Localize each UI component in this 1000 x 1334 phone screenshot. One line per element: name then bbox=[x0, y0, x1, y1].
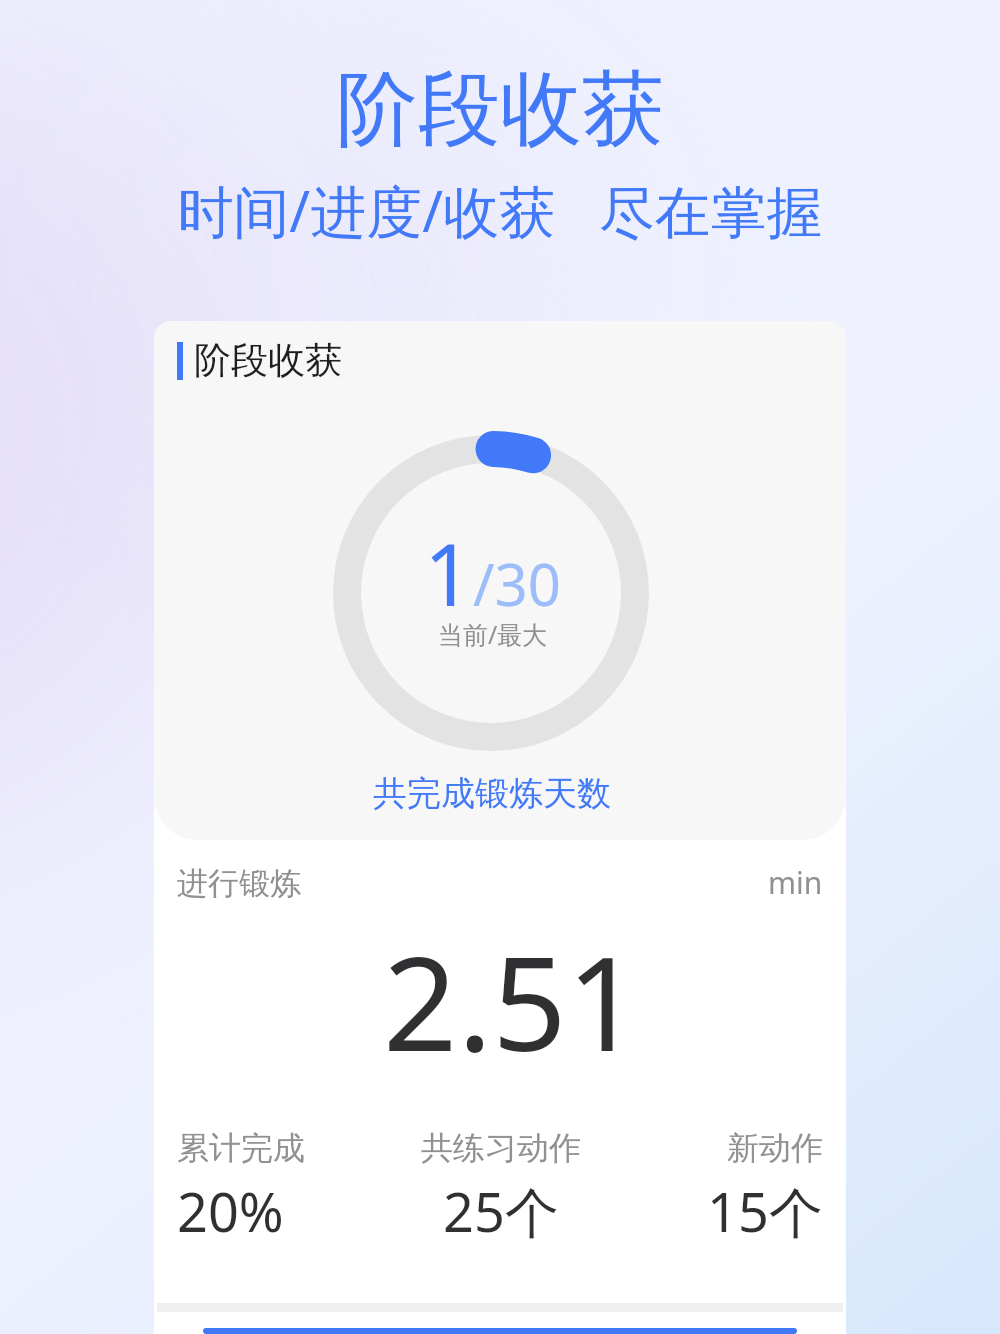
button[interactable]: 共练习动作 bbox=[393, 1128, 608, 1248]
staticText: 进行锻炼 bbox=[177, 864, 301, 903]
other: 锻炼天数进度 1 / 30 bbox=[333, 435, 649, 751]
staticText: 时间/进度/收获 尽在掌握 bbox=[0, 172, 1000, 248]
staticText: 2.51 bbox=[189, 912, 835, 1089]
staticText: min bbox=[768, 862, 823, 903]
staticText: 15个 bbox=[707, 1174, 823, 1248]
staticText: 累计完成 bbox=[177, 1128, 305, 1168]
button[interactable]: 开始锻炼 bbox=[203, 1328, 797, 1334]
button[interactable]: 阶段收获 bbox=[154, 321, 846, 840]
staticText: 25个 bbox=[443, 1174, 559, 1248]
staticText: /30 bbox=[473, 544, 561, 623]
staticText: 共完成锻炼天数 bbox=[154, 772, 838, 815]
staticText: 阶段收获 bbox=[0, 58, 1000, 161]
staticText: 1 bbox=[424, 515, 473, 631]
staticText: 阶段收获 bbox=[194, 337, 342, 384]
staticText: 20% bbox=[177, 1174, 284, 1248]
button[interactable]: 新动作 bbox=[608, 1128, 823, 1248]
staticText: 共练习动作 bbox=[421, 1128, 581, 1168]
staticText: 当前/最大 bbox=[438, 617, 548, 651]
staticText: 新动作 bbox=[727, 1128, 823, 1168]
button[interactable]: 累计完成 bbox=[177, 1128, 393, 1248]
